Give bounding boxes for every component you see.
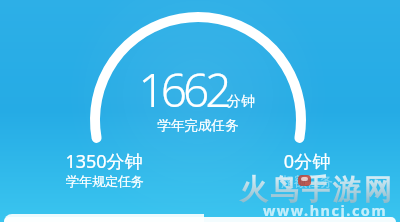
staticText: 超额任务 (227, 173, 387, 189)
staticText: 1350分钟 (24, 149, 184, 174)
staticText: 分钟 (227, 93, 255, 111)
button[interactable]: 1350分钟 (24, 149, 184, 174)
button[interactable]: 0分钟 (227, 149, 387, 174)
staticText: 火鸟手游网 (238, 172, 393, 207)
staticText: www.hncj.com (250, 200, 400, 220)
staticText: 学年规定任务 (25, 173, 185, 189)
staticText: 0分钟 (227, 149, 387, 174)
staticText: 学年完成任务 (118, 117, 278, 134)
staticText: 1662 (103, 58, 263, 121)
